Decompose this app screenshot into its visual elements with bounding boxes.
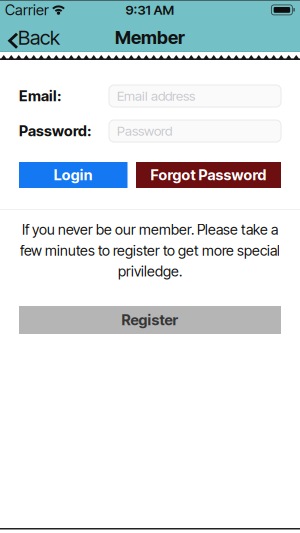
staticText: If you never be our member. Please take … — [22, 221, 278, 238]
button[interactable]: Register — [19, 306, 281, 334]
staticText: Member — [115, 27, 185, 48]
staticText: Back — [18, 25, 60, 50]
staticText: Password — [117, 123, 172, 139]
button[interactable]: Login — [19, 162, 127, 188]
staticText: Login — [54, 166, 93, 184]
button[interactable]: Password — [109, 120, 281, 142]
staticText: priviledge. — [118, 263, 182, 280]
button[interactable]: Forgot Password — [136, 162, 281, 188]
staticText: Password: — [19, 122, 91, 140]
button[interactable]: Email address — [109, 85, 281, 107]
staticText: 9:31 AM — [125, 2, 174, 18]
staticText: Forgot Password — [150, 166, 266, 184]
staticText: Register — [121, 311, 178, 329]
staticText: Email: — [19, 87, 61, 105]
staticText: Email address — [117, 88, 195, 104]
staticText: few minutes to register to get more spec… — [20, 242, 280, 259]
staticText: Carrier — [5, 1, 49, 19]
button[interactable]: Back — [0, 20, 60, 50]
